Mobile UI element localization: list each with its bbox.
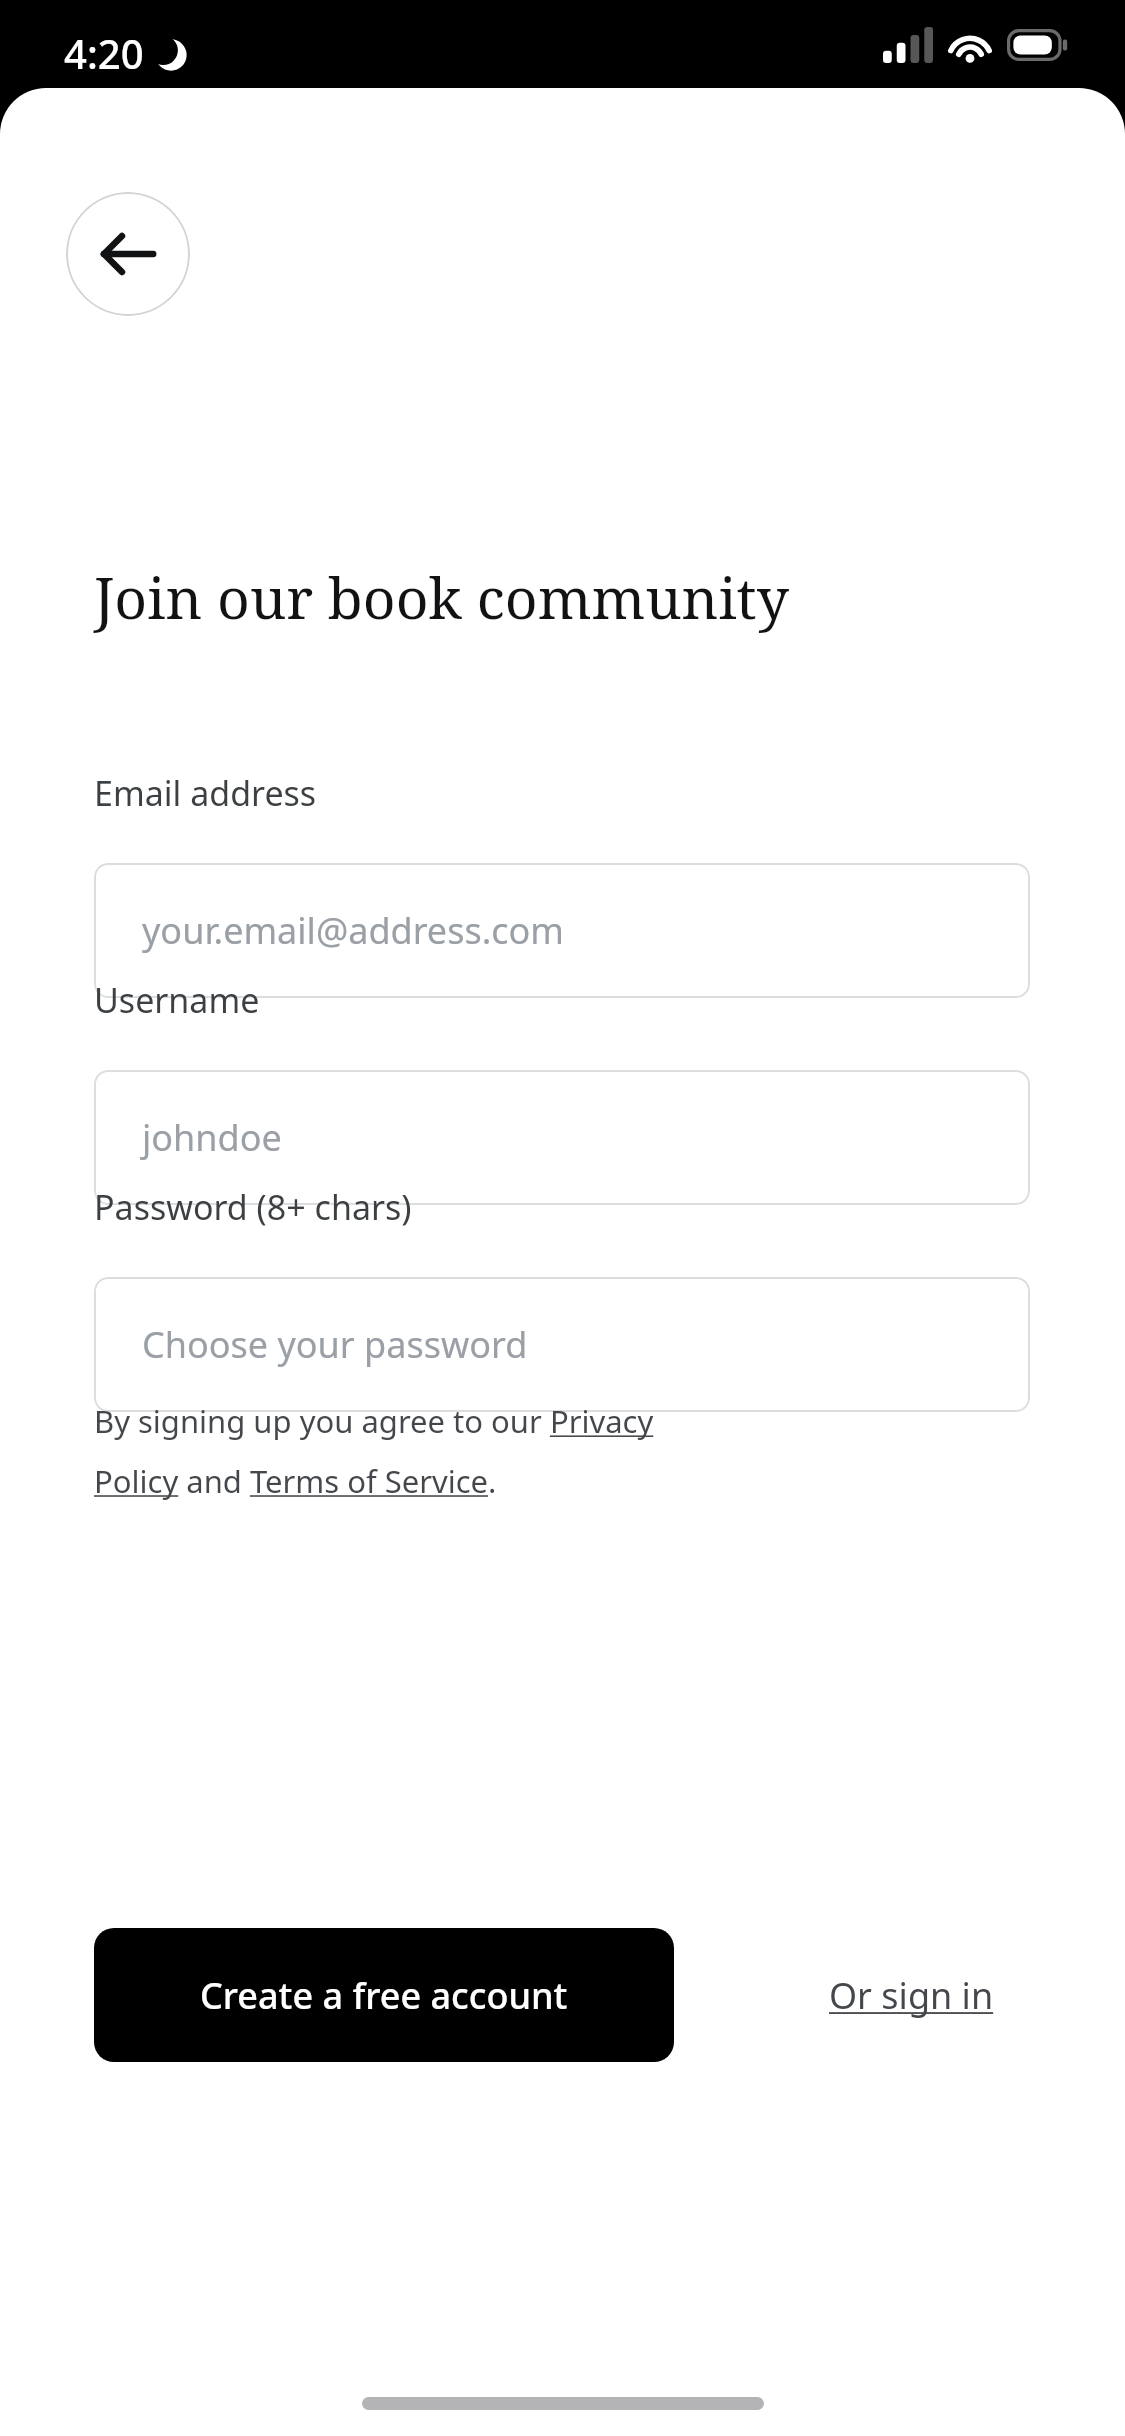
staticText: Password (8+ chars) xyxy=(94,1184,412,1230)
button[interactable]: Choose your password xyxy=(94,1277,1030,1412)
button[interactable]: Back xyxy=(66,192,190,316)
staticText: Choose your password xyxy=(142,1320,528,1369)
button[interactable]: Or sign in xyxy=(675,1928,1125,2062)
staticText: Or sign in xyxy=(829,1971,994,2020)
staticText: Email address xyxy=(94,770,317,816)
button[interactable]: your.email@address.com xyxy=(94,863,1030,998)
staticText: Create a free account xyxy=(200,1971,568,2020)
staticText: By signing up you agree to our Privacy P… xyxy=(94,1400,694,1502)
staticText: johndoe xyxy=(142,1113,282,1162)
staticText: Username xyxy=(94,977,260,1023)
button[interactable]: johndoe xyxy=(94,1070,1030,1205)
staticText: 4:20 xyxy=(64,26,144,80)
staticText: Join our book community xyxy=(94,558,789,636)
button[interactable]: Create a free account xyxy=(94,1928,674,2062)
staticText: your.email@address.com xyxy=(142,906,565,955)
